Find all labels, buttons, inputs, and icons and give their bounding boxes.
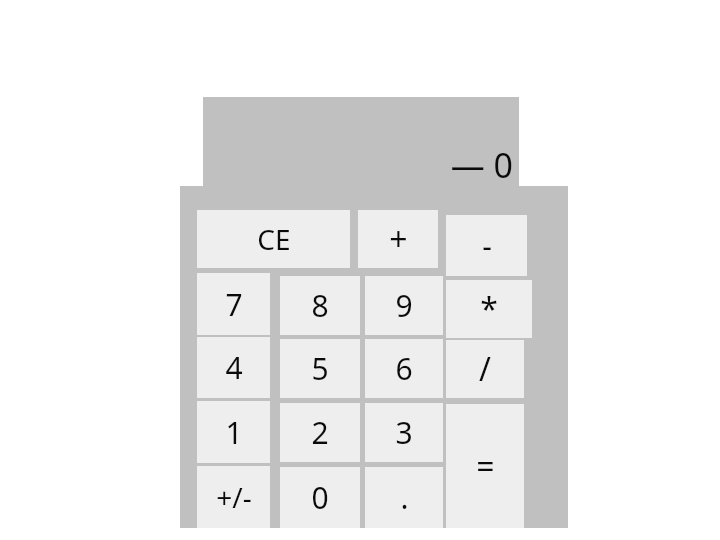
staticText: 7: [225, 284, 243, 325]
staticText: -: [482, 225, 492, 266]
button[interactable]: +: [358, 210, 438, 268]
button[interactable]: 3: [365, 403, 443, 462]
staticText: 4: [225, 347, 243, 388]
staticText: /: [479, 347, 491, 391]
staticText: 6: [395, 348, 413, 389]
staticText: — 0: [450, 142, 513, 184]
button[interactable]: *: [446, 280, 532, 338]
button[interactable]: 7: [197, 273, 270, 335]
button[interactable]: 1: [197, 401, 270, 463]
button[interactable]: -: [446, 215, 527, 276]
button[interactable]: 4: [197, 337, 270, 398]
button[interactable]: 5: [280, 339, 360, 398]
staticText: +: [389, 217, 408, 261]
staticText: 2: [311, 412, 329, 453]
staticText: =: [476, 444, 495, 488]
button[interactable]: 6: [365, 339, 443, 398]
staticText: 3: [395, 412, 413, 453]
staticText: 9: [395, 285, 413, 326]
button[interactable]: /: [446, 340, 524, 398]
staticText: *: [480, 287, 498, 331]
staticText: .: [400, 477, 409, 518]
button[interactable]: .: [365, 467, 443, 528]
staticText: 5: [311, 348, 329, 389]
button[interactable]: 9: [365, 276, 443, 335]
button[interactable]: CE: [197, 210, 350, 268]
staticText: 8: [311, 285, 329, 326]
staticText: 0: [311, 477, 329, 518]
staticText: 1: [225, 412, 243, 453]
button[interactable]: +/-: [197, 466, 270, 528]
button[interactable]: 2: [280, 403, 360, 462]
button[interactable]: 8: [280, 276, 360, 335]
button[interactable]: 0: [280, 467, 360, 528]
staticText: +/-: [216, 478, 252, 516]
button[interactable]: =: [446, 404, 524, 528]
staticText: CE: [257, 220, 291, 258]
